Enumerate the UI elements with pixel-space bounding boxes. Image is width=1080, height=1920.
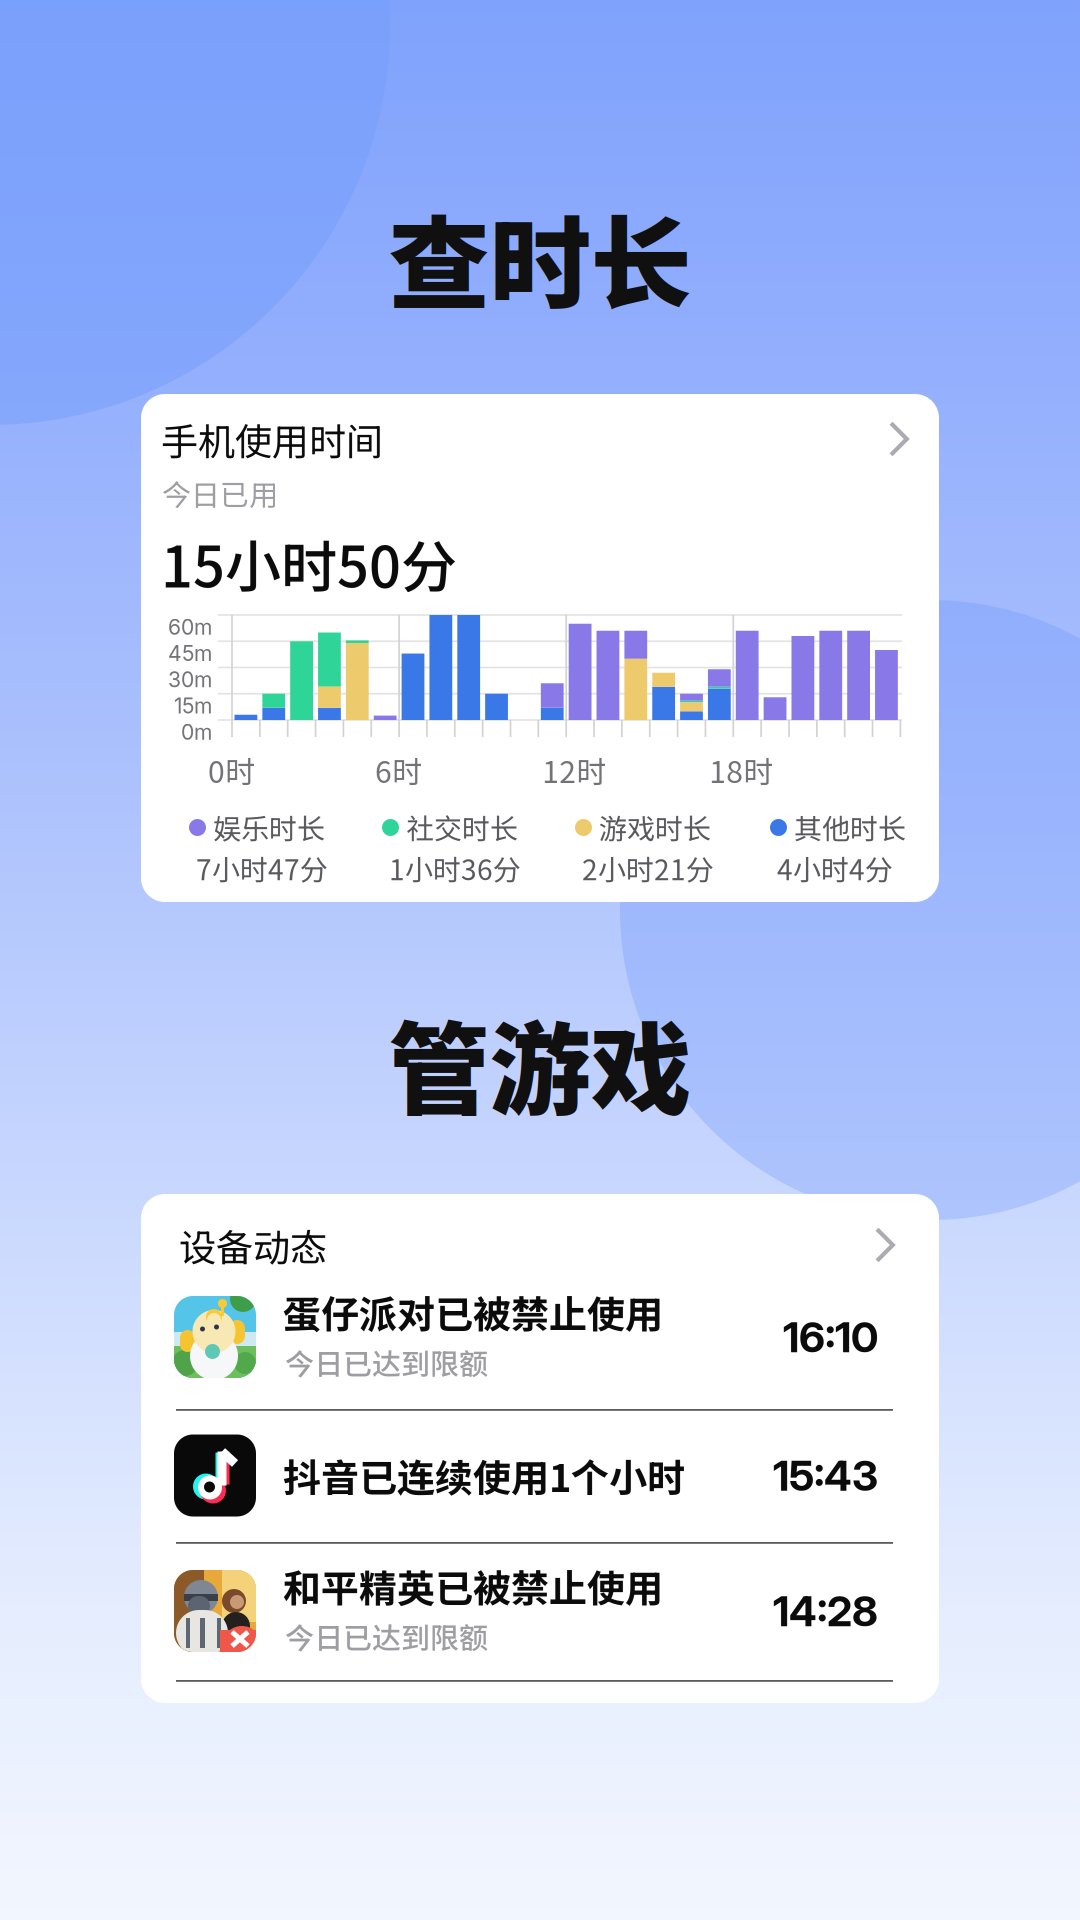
staticText: 45m <box>168 640 212 666</box>
staticText: 0时 <box>208 748 255 792</box>
staticText: 蛋仔派对已被禁止使用 <box>283 1284 663 1339</box>
staticText: 6时 <box>375 748 422 792</box>
button[interactable]: 蛋仔派对已被禁止使用 <box>141 1265 905 1409</box>
button[interactable]: 抖音已连续使用1个小时 <box>141 1409 905 1542</box>
staticText: 18时 <box>709 748 773 792</box>
staticText: 手机使用时间 <box>161 412 383 466</box>
staticText: 7小时47分 <box>196 848 328 888</box>
staticText: 娱乐时长 <box>213 807 325 847</box>
staticText: 1小时36分 <box>389 848 521 888</box>
staticText: 和平精英已被禁止使用 <box>283 1558 663 1613</box>
staticText: 今日已用 <box>162 472 278 514</box>
staticText: 2小时21分 <box>582 848 714 888</box>
staticText: 12时 <box>542 748 606 792</box>
staticText: 管游戏 <box>388 990 691 1136</box>
staticText: 15小时50分 <box>161 522 457 604</box>
staticText: 今日已达到限额 <box>285 1341 488 1383</box>
button[interactable]: 和平精英已被禁止使用 <box>141 1542 905 1680</box>
staticText: 其他时长 <box>794 807 906 847</box>
staticText: 社交时长 <box>406 807 518 847</box>
staticText: 15m <box>174 693 212 718</box>
staticText: 14:28 <box>773 1586 878 1636</box>
staticText: 查时长 <box>388 184 691 330</box>
staticText: 抖音已连续使用1个小时 <box>283 1448 685 1503</box>
button[interactable]: 设备动态 <box>141 1194 859 1246</box>
staticText: 30m <box>168 667 212 692</box>
staticText: 16:10 <box>783 1312 878 1362</box>
staticText: 游戏时长 <box>599 807 711 847</box>
staticText: 15:43 <box>773 1450 878 1501</box>
button[interactable]: 手机使用时间 <box>141 394 891 446</box>
staticText: 0m <box>181 719 212 745</box>
staticText: 4小时4分 <box>777 848 893 888</box>
staticText: 60m <box>168 614 212 640</box>
staticText: 设备动态 <box>179 1218 327 1272</box>
staticText: 今日已达到限额 <box>285 1615 488 1657</box>
